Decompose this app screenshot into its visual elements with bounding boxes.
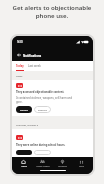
button[interactable]: They accessed objectionable content. — [12, 80, 93, 116]
button[interactable]: Locations — [53, 160, 72, 168]
staticText: Today — [16, 64, 24, 68]
staticText: They accessed objectionable content. — [16, 90, 65, 94]
button[interactable]: Family Mobile — [33, 160, 52, 168]
staticText: Family Mobile — [36, 165, 50, 168]
staticText: More — [79, 165, 84, 168]
staticText: Details — [20, 108, 28, 111]
staticText: Dismiss — [38, 108, 47, 111]
button[interactable]: Home — [14, 160, 33, 168]
button[interactable]: Back — [15, 51, 22, 58]
button[interactable]: Details — [16, 106, 32, 113]
staticText: Home — [21, 165, 27, 168]
button[interactable]: Dismiss — [34, 106, 51, 113]
staticText: Last week — [28, 64, 41, 68]
staticText: Get alerts to objectionable phone use. — [0, 3, 104, 19]
staticText: 9:30 — [17, 40, 23, 44]
staticText: Locations — [58, 165, 67, 168]
staticText: Thursday, October 6 — [16, 124, 39, 127]
staticText: Notifications — [23, 54, 42, 58]
button[interactable]: Dismiss — [34, 150, 51, 155]
staticText: Today — [16, 75, 23, 78]
staticText: It contained violence, weapons, self-har… — [16, 96, 74, 103]
button[interactable]: They were online during school hours. — [12, 129, 93, 157]
button[interactable]: Today — [16, 61, 24, 71]
button[interactable]: Details — [16, 150, 32, 155]
staticText: They were online during school hours. — [16, 143, 66, 147]
button[interactable]: More — [72, 160, 91, 168]
button[interactable]: Last week — [28, 61, 41, 68]
